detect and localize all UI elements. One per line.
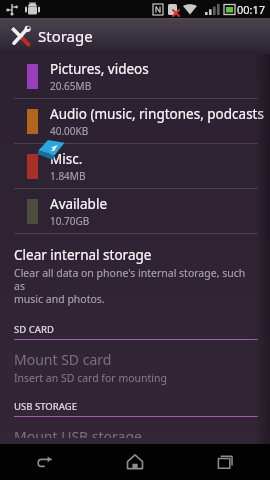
button[interactable]: Misc. <box>0 144 270 188</box>
button[interactable]: Recent apps <box>180 444 270 480</box>
button[interactable]: Audio (music, ringtones, podcasts <box>0 99 270 143</box>
staticText: Insert an SD card for mounting <box>14 371 167 385</box>
button[interactable]: Mount USB storage <box>0 420 270 444</box>
staticText: Clear all data on phone's internal stora… <box>14 266 256 306</box>
staticText: Mount USB storage <box>14 427 142 438</box>
staticText: 10.70GB <box>50 214 90 228</box>
button[interactable]: Storage <box>0 18 270 54</box>
staticText: USB STORAGE <box>14 400 77 413</box>
staticText: Available <box>50 195 107 213</box>
button[interactable]: Available <box>0 189 270 233</box>
staticText: Storage <box>38 26 93 46</box>
staticText: 40.00KB <box>50 124 89 138</box>
button[interactable]: Home <box>90 444 180 480</box>
staticText: Audio (music, ringtones, podcasts <box>50 105 264 123</box>
button[interactable]: Clear internal storage <box>0 239 270 312</box>
button[interactable]: Back <box>0 444 90 480</box>
staticText: 1.84MB <box>50 169 86 183</box>
staticText: Mount SD card <box>14 350 112 369</box>
staticText: Pictures, videos <box>50 60 149 78</box>
button[interactable]: Pictures, videos <box>0 54 270 98</box>
staticText: Clear internal storage <box>14 246 152 264</box>
staticText: Misc. <box>50 150 83 168</box>
staticText: 00:17 <box>237 2 266 17</box>
button[interactable]: Mount SD card <box>0 343 270 391</box>
staticText: 20.65MB <box>50 79 92 93</box>
staticText: SD CARD <box>14 323 54 336</box>
